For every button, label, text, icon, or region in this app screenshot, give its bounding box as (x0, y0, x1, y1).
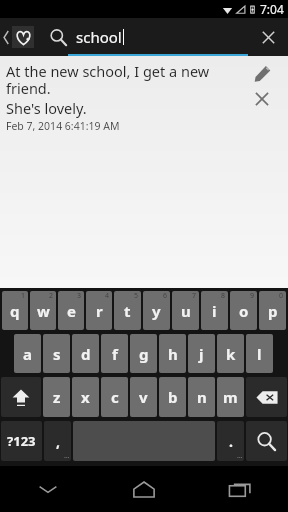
button[interactable]: , (44, 421, 71, 461)
button[interactable]: 5 (114, 291, 141, 330)
staticText: . (229, 432, 233, 451)
staticText: o (239, 301, 249, 321)
button[interactable]: Edit (247, 61, 277, 85)
button[interactable]: 9 (230, 291, 257, 330)
staticText: u (181, 301, 191, 321)
staticText: She's lovely. (6, 98, 87, 118)
staticText: d (81, 344, 91, 364)
button[interactable]: Search (246, 421, 287, 461)
button[interactable]: n (188, 377, 215, 417)
staticText: h (168, 344, 178, 364)
button[interactable]: j (188, 334, 215, 373)
button[interactable]: 1 (2, 291, 28, 330)
button[interactable]: h (159, 334, 186, 373)
staticText: 8 (221, 291, 226, 301)
staticText: 0 (279, 291, 284, 301)
button[interactable]: school (68, 18, 248, 56)
button[interactable]: Search (48, 27, 68, 47)
button[interactable]: 3 (58, 291, 84, 330)
button[interactable]: Hide keyboard (0, 466, 96, 512)
button[interactable]: k (217, 334, 244, 373)
button[interactable]: Delete (247, 87, 277, 111)
button[interactable]: v (130, 377, 157, 417)
staticText: y (152, 301, 161, 321)
staticText: 4 (105, 291, 110, 301)
button[interactable]: Recent apps (192, 466, 288, 512)
staticText: z (53, 387, 61, 407)
staticText: l (257, 344, 262, 364)
staticText: school (76, 27, 122, 47)
button[interactable]: f (101, 334, 128, 373)
staticText: 7 (192, 291, 197, 301)
button[interactable]: 4 (86, 291, 112, 330)
staticText: s (53, 344, 61, 364)
button[interactable]: Shift (1, 377, 41, 417)
staticText: f (112, 344, 118, 364)
staticText: a (23, 344, 32, 364)
button[interactable]: Navigate up (0, 18, 38, 56)
staticText: t (124, 301, 131, 321)
staticText: … (237, 451, 243, 461)
button[interactable]: 2 (30, 291, 56, 330)
staticText: n (197, 387, 207, 407)
staticText: j (199, 344, 204, 364)
staticText: c (111, 387, 119, 407)
staticText: 9 (250, 291, 255, 301)
staticText: 7:04 (260, 1, 284, 17)
button[interactable]: 8 (201, 291, 228, 330)
staticText: r (96, 301, 103, 321)
staticText: q (10, 301, 20, 321)
button[interactable]: d (72, 334, 99, 373)
staticText: 1 (21, 291, 26, 301)
button[interactable]: b (159, 377, 186, 417)
staticText: Feb 7, 2014 6:41:19 AM (6, 119, 120, 133)
button[interactable]: s (43, 334, 70, 373)
staticText: 5 (134, 291, 139, 301)
button[interactable]: . (217, 421, 244, 461)
staticText: 6 (163, 291, 168, 301)
staticText: 2 (49, 291, 54, 301)
button[interactable]: Home (96, 466, 192, 512)
staticText: , (56, 432, 60, 451)
button[interactable]: 7 (172, 291, 199, 330)
button[interactable]: z (43, 377, 70, 417)
button[interactable]: a (14, 334, 41, 373)
button[interactable]: At the new school, I get a new friend. (0, 56, 288, 139)
button[interactable]: Backspace (246, 377, 287, 417)
button[interactable]: ?123 (1, 421, 42, 461)
staticText: 3 (77, 291, 82, 301)
staticText: e (67, 301, 76, 321)
staticText: w (37, 301, 50, 321)
staticText: x (81, 387, 90, 407)
staticText: i (212, 301, 217, 321)
button[interactable]: 0 (259, 291, 286, 330)
staticText: b (168, 387, 178, 407)
button[interactable]: Clear search (248, 18, 288, 56)
staticText: p (268, 301, 278, 321)
button[interactable]: m (217, 377, 244, 417)
staticText: At the new school, I get a new friend. (6, 61, 240, 98)
staticText: ?123 (7, 432, 36, 450)
button[interactable]: l (246, 334, 273, 373)
staticText: k (226, 344, 236, 364)
button[interactable]: x (72, 377, 99, 417)
button[interactable]: c (101, 377, 128, 417)
staticText: m (223, 387, 238, 407)
staticText: v (139, 387, 148, 407)
staticText: … (64, 451, 70, 461)
button[interactable]: g (130, 334, 157, 373)
button[interactable]: 6 (143, 291, 170, 330)
staticText: g (139, 344, 149, 364)
